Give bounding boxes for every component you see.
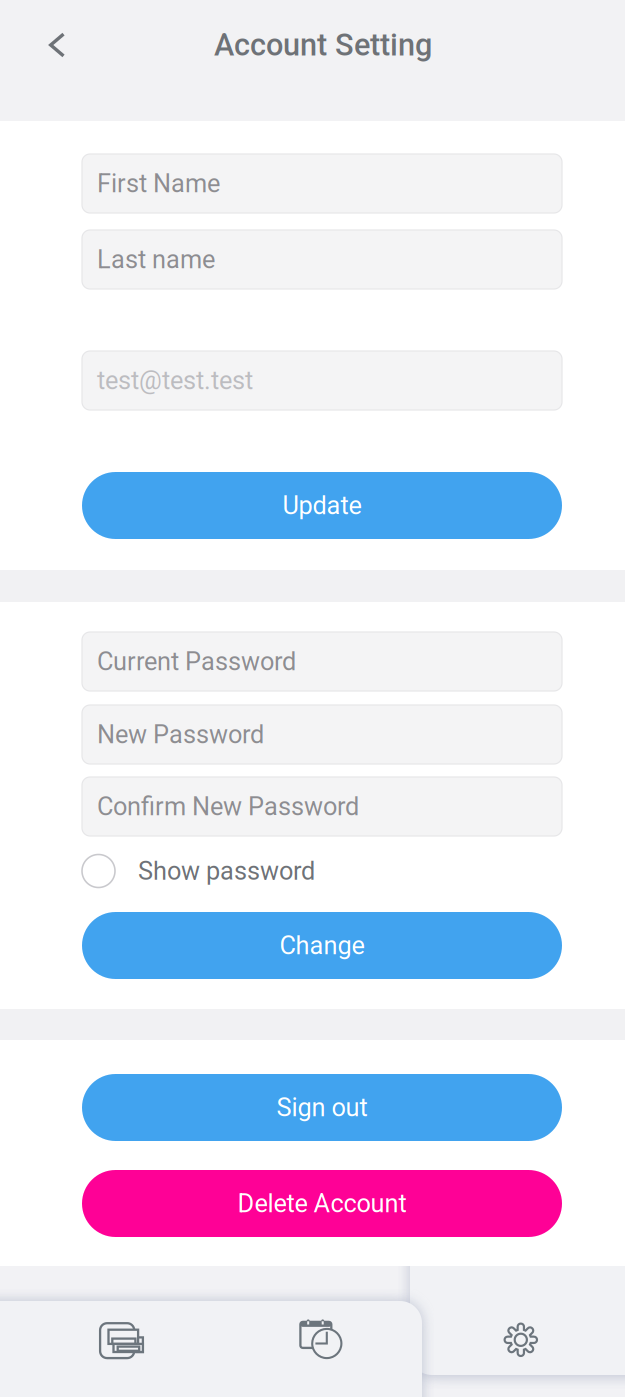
staticText: Sign out — [276, 1093, 367, 1122]
staticText: Change — [279, 931, 364, 960]
button[interactable]: Confirm New Password — [82, 777, 562, 836]
staticText: test@test.test — [97, 366, 253, 395]
staticText: Show password — [138, 856, 315, 886]
button[interactable]: Delete Account — [82, 1170, 562, 1237]
button[interactable]: Sign out — [82, 1074, 562, 1141]
button[interactable]: New Password — [82, 705, 562, 764]
staticText: First Name — [97, 169, 220, 198]
button[interactable]: Settings — [473, 1300, 569, 1380]
staticText: Last name — [97, 245, 215, 274]
button[interactable]: Update — [82, 472, 562, 539]
staticText: Account Setting — [214, 27, 432, 63]
button[interactable]: Back — [31, 19, 83, 71]
button[interactable]: Change — [82, 912, 562, 979]
staticText: Confirm New Password — [97, 792, 359, 821]
button[interactable]: test@test.test — [82, 351, 562, 410]
staticText: Delete Account — [237, 1189, 406, 1218]
button[interactable]: Documents — [73, 1300, 169, 1380]
button[interactable]: First Name — [82, 154, 562, 213]
staticText: Update — [282, 491, 361, 520]
staticText: New Password — [97, 720, 264, 749]
button[interactable]: Current Password — [82, 632, 562, 691]
button[interactable]: Show password — [82, 854, 562, 888]
button[interactable]: Last name — [82, 230, 562, 289]
button[interactable]: Schedule — [273, 1299, 369, 1379]
staticText: Current Password — [97, 647, 296, 676]
